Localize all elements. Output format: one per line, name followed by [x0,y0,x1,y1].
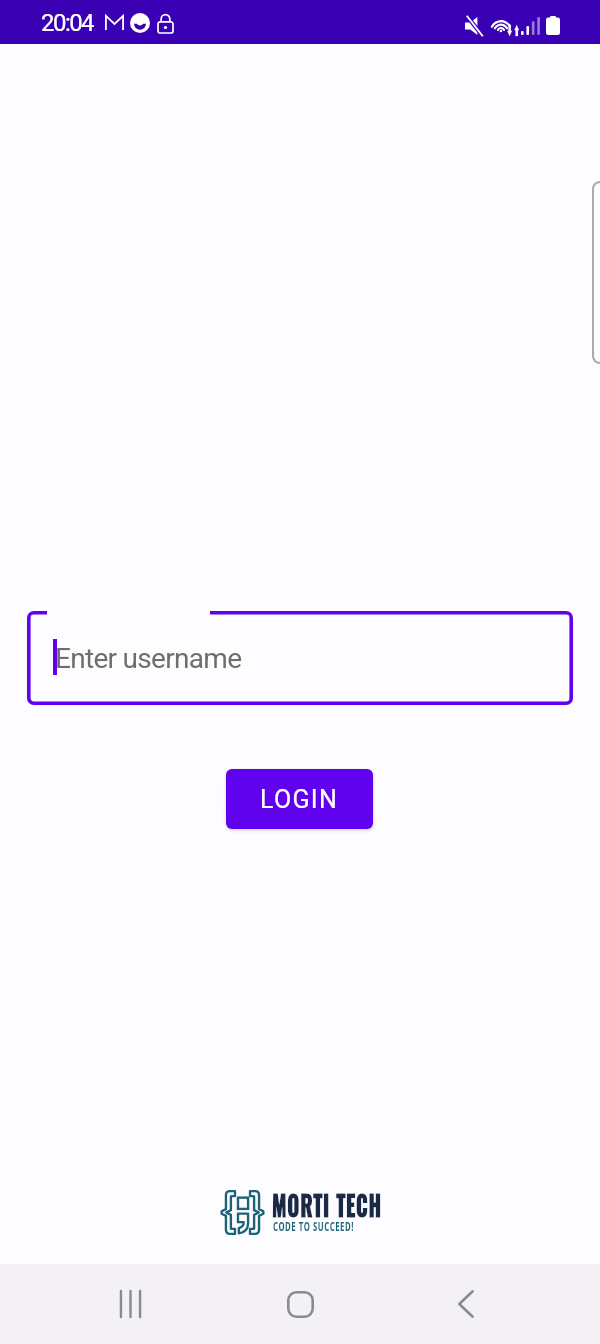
staticText: LOGIN [260,785,339,814]
staticText: MORTI TECH [272,1184,382,1225]
staticText: CODE TO SUCCEED! [273,1217,355,1235]
button[interactable]: Recent apps [90,1264,170,1344]
staticText: 20:04 [41,9,94,37]
staticText: Enter username [55,642,242,675]
button[interactable]: Enter username [27,611,573,705]
button[interactable]: Back [426,1264,506,1344]
button[interactable]: LOGIN [226,769,373,829]
button[interactable]: Home [260,1264,340,1344]
